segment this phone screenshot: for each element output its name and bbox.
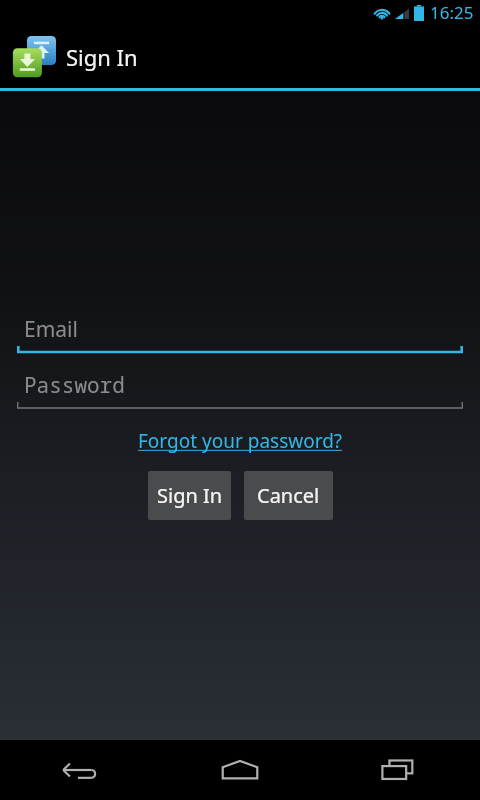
button[interactable]: Forgot your password?	[132, 425, 349, 457]
staticText: Email	[24, 315, 78, 344]
button[interactable]: Password	[17, 371, 463, 412]
staticText: Sign In	[157, 482, 223, 509]
staticText: Sign In	[66, 42, 138, 72]
button[interactable]: Cancel	[244, 471, 333, 520]
button[interactable]: Home	[160, 740, 320, 800]
button[interactable]: Back	[0, 740, 160, 800]
button[interactable]: Email	[17, 315, 463, 356]
button[interactable]: Recent apps	[320, 740, 480, 800]
staticText: Forgot your password?	[138, 428, 343, 454]
staticText: Password	[24, 371, 125, 400]
button[interactable]: Sign In	[148, 471, 231, 520]
staticText: Cancel	[257, 482, 320, 509]
staticText: 16:25	[430, 1, 474, 24]
